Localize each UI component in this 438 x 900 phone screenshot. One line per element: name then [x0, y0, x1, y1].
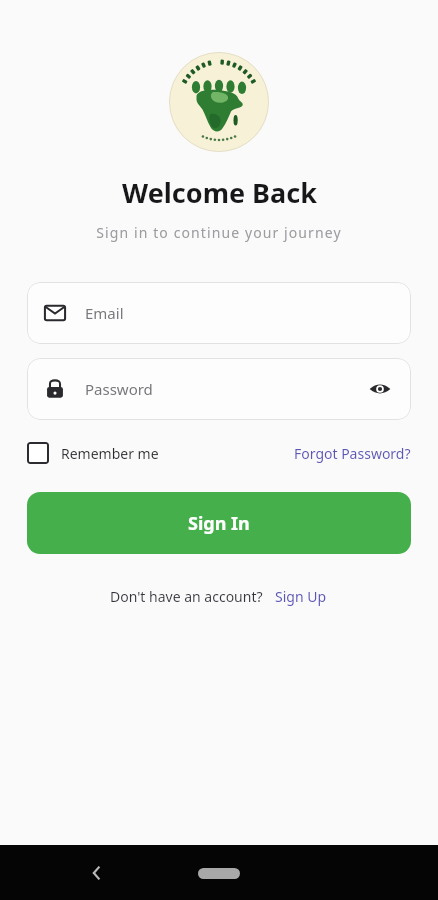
staticText: Welcome Back [122, 174, 317, 211]
staticText: Remember me [61, 444, 159, 463]
button[interactable]: Home [187, 860, 251, 886]
button[interactable]: Back [76, 852, 118, 894]
button[interactable]: Sign In [27, 492, 411, 554]
staticText: Don't have an account? [110, 587, 263, 606]
button[interactable]: Forgot Password? [294, 440, 411, 467]
button[interactable]: Sign Up [273, 584, 329, 609]
button[interactable]: Password [27, 358, 411, 420]
staticText: Forgot Password? [294, 444, 411, 463]
staticText: Password [85, 379, 153, 399]
staticText: Sign In [188, 511, 250, 536]
button[interactable]: Show password [365, 374, 395, 404]
staticText: Sign Up [275, 587, 327, 606]
staticText: Email [85, 303, 124, 323]
button[interactable]: Remember me [27, 438, 159, 468]
staticText: Sign in to continue your journey [96, 223, 342, 242]
button[interactable]: Email [27, 282, 411, 344]
